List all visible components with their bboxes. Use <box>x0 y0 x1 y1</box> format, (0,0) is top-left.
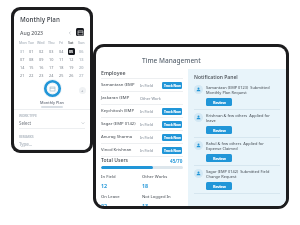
staticText: Sagar (EMP 0142) Submitted Field Change … <box>206 169 280 179</box>
button[interactable]: 07 <box>18 55 27 63</box>
staticText: 08 <box>29 57 34 62</box>
button[interactable]: Review <box>206 154 232 162</box>
staticText: WORK TYPE <box>19 114 37 118</box>
staticText: Jaskaran (EMP 0146) <box>101 95 140 101</box>
button[interactable]: 12 <box>66 55 76 63</box>
staticText: Track Now <box>164 148 181 153</box>
staticText: In Field <box>140 135 161 140</box>
button[interactable]: 31 <box>18 47 27 55</box>
button[interactable]: 22 <box>27 71 36 79</box>
staticText: 02 <box>39 49 44 54</box>
staticText: Track Now <box>164 135 181 140</box>
staticText: 06 <box>79 49 84 54</box>
staticText: 13 <box>79 57 84 62</box>
button[interactable]: Samantasn (EMP 0123) <box>101 79 183 91</box>
button[interactable]: 15 <box>27 63 36 71</box>
staticText: In Field <box>140 83 161 88</box>
staticText: Review <box>213 156 226 161</box>
button[interactable]: Previous <box>66 29 73 36</box>
staticText: Track Now <box>164 122 181 127</box>
staticText: 12 <box>101 182 108 189</box>
button[interactable]: Sagar (EMP 0142) <box>101 118 183 130</box>
button[interactable]: Calendar <box>76 28 84 36</box>
button[interactable]: 26 <box>66 71 76 79</box>
button[interactable]: 08 <box>27 55 36 63</box>
button[interactable]: 14 <box>18 63 27 71</box>
staticText: Rahul & few others Applied for Expense C… <box>206 141 280 151</box>
staticText: 04 <box>59 49 64 54</box>
staticText: Total Users <box>101 157 129 164</box>
staticText: Track Now <box>164 83 181 88</box>
staticText: On Leave <box>101 194 120 200</box>
button[interactable]: Vinod Krishnan (EMP 0148) <box>101 144 183 156</box>
button[interactable]: 19 <box>66 63 76 71</box>
button[interactable]: 20 <box>76 63 86 71</box>
staticText: 13 <box>142 202 149 206</box>
staticText: Sagar (EMP 0142) <box>101 121 140 127</box>
button[interactable]: Anurag Sharma (EMP 0144) <box>101 131 183 143</box>
button[interactable]: 11 <box>56 55 66 63</box>
staticText: 15 <box>29 65 34 70</box>
button[interactable]: Review <box>206 182 232 190</box>
staticText: REMARKS <box>19 135 34 139</box>
staticText: Review <box>213 128 226 133</box>
staticText: 01 <box>29 49 34 54</box>
staticText: Fri <box>59 40 64 45</box>
staticText: 10 <box>49 57 54 62</box>
button[interactable]: Keychitosh (EMP 0141) <box>101 105 183 117</box>
staticText: 27 <box>79 73 84 78</box>
staticText: Monthly Plan <box>20 15 60 23</box>
button[interactable]: 21 <box>18 71 27 79</box>
staticText: 26 <box>69 73 74 78</box>
staticText: 45/70 <box>170 158 183 164</box>
button[interactable]: Jaskaran (EMP 0146) <box>101 92 183 104</box>
button[interactable]: 06 <box>76 47 86 55</box>
button[interactable]: 25 <box>56 71 66 79</box>
button[interactable]: 16 <box>36 63 46 71</box>
staticText: + <box>81 88 84 93</box>
staticText: 19 <box>69 65 74 70</box>
button[interactable]: 02 <box>36 47 46 55</box>
button[interactable]: 05 <box>66 47 76 55</box>
button[interactable]: 17 <box>46 63 56 71</box>
button[interactable]: 23 <box>36 71 46 79</box>
button[interactable]: 24 <box>46 71 56 79</box>
button[interactable]: 10 <box>46 55 56 63</box>
button[interactable]: 27 <box>76 71 86 79</box>
staticText: Not Logged In <box>142 194 171 200</box>
staticText: Sat <box>68 40 74 45</box>
staticText: Tue <box>28 40 35 45</box>
button[interactable]: Track Now <box>162 82 182 89</box>
staticText: 22 <box>29 73 34 78</box>
staticText: In Field <box>101 174 116 180</box>
staticText: Monthly Plan <box>40 100 64 105</box>
button[interactable]: Review <box>206 98 232 106</box>
staticText: 18 <box>142 182 149 189</box>
button[interactable]: Select <box>19 120 85 126</box>
button[interactable]: 04 <box>56 47 66 55</box>
button[interactable]: Track Now <box>162 147 182 154</box>
staticText: Notification Panel <box>194 74 238 81</box>
staticText: 20 <box>79 65 84 70</box>
button[interactable]: Track Now <box>162 121 182 128</box>
button[interactable]: 13 <box>76 55 86 63</box>
staticText: Sun <box>78 40 85 45</box>
staticText: Mon <box>19 40 27 45</box>
button[interactable]: Track Now <box>162 134 182 141</box>
staticText: 09 <box>39 57 44 62</box>
button[interactable]: Track Now <box>162 108 182 115</box>
staticText: 14 <box>20 65 25 70</box>
staticText: 16 <box>39 65 44 70</box>
staticText: Time Management <box>142 56 201 65</box>
button[interactable]: Review <box>206 126 232 134</box>
staticText: 18 <box>59 65 64 70</box>
staticText: 21 <box>20 73 25 78</box>
button[interactable]: More <box>79 87 86 94</box>
button[interactable]: 18 <box>56 63 66 71</box>
staticText: Wed <box>37 40 45 45</box>
staticText: Anurag Sharma (EMP 0144) <box>101 134 140 140</box>
staticText: Type... <box>19 141 33 147</box>
button[interactable]: 09 <box>36 55 46 63</box>
button[interactable]: 01 <box>27 47 36 55</box>
button[interactable]: 03 <box>46 47 56 55</box>
